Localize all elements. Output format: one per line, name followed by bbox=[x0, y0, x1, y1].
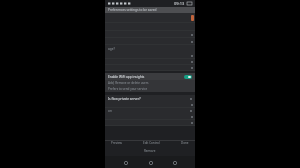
staticText: Is flow private server? bbox=[108, 97, 141, 101]
button[interactable] bbox=[105, 38, 195, 45]
button[interactable]: Is flow private server? bbox=[105, 95, 195, 102]
staticText: Enable WiFi app insights bbox=[108, 75, 145, 79]
button[interactable] bbox=[105, 65, 195, 71]
button[interactable]: Add, Remove or delete users bbox=[105, 80, 195, 86]
staticText: Remove bbox=[144, 149, 156, 153]
button[interactable] bbox=[105, 59, 195, 65]
staticText: 09:13 bbox=[174, 1, 185, 6]
button[interactable]: Preview bbox=[110, 140, 123, 146]
button[interactable]: Back bbox=[121, 158, 130, 167]
staticText: age? bbox=[108, 47, 115, 51]
staticText: Edit Control bbox=[143, 141, 160, 145]
button[interactable] bbox=[105, 114, 195, 120]
button[interactable] bbox=[105, 13, 195, 23]
staticText: Prefers to send your service bbox=[108, 87, 148, 91]
staticText: Done bbox=[181, 141, 189, 145]
button[interactable] bbox=[105, 31, 195, 38]
button[interactable]: on bbox=[105, 108, 195, 114]
button[interactable]: Home bbox=[146, 158, 155, 167]
button[interactable] bbox=[105, 120, 195, 126]
button[interactable]: Toggle WiFi app insights bbox=[184, 75, 192, 79]
button[interactable]: Enable WiFi app insights bbox=[105, 73, 195, 80]
staticText: on bbox=[108, 109, 112, 113]
button[interactable]: Done bbox=[180, 140, 190, 146]
button[interactable]: Recent apps bbox=[170, 158, 179, 167]
button[interactable]: age? bbox=[105, 45, 195, 52]
staticText: Preview bbox=[111, 141, 122, 145]
button[interactable]: Preferences settings to be saved bbox=[105, 7, 195, 13]
button[interactable] bbox=[105, 102, 195, 108]
staticText: Add, Remove or delete users bbox=[108, 81, 149, 85]
button[interactable] bbox=[105, 52, 195, 59]
button[interactable]: Edit Control bbox=[142, 140, 161, 146]
button[interactable]: Remove bbox=[143, 148, 157, 154]
button[interactable]: Prefers to send your service bbox=[105, 86, 195, 92]
staticText: Preferences settings to be saved bbox=[108, 8, 157, 12]
